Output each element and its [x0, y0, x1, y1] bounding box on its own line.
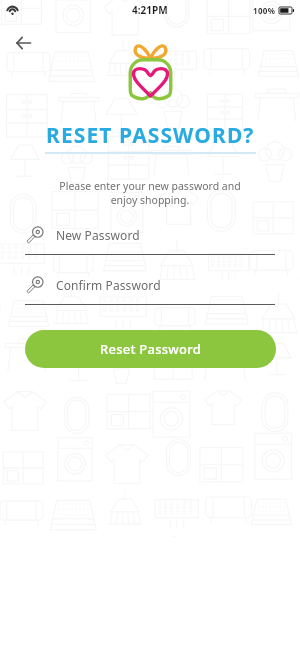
- button[interactable]: Confirm Password: [25, 276, 275, 305]
- staticText: Please enter your new password and enjoy…: [59, 179, 241, 207]
- staticText: Confirm Password: [56, 277, 161, 293]
- staticText: New Password: [56, 227, 140, 243]
- staticText: 4:21PM: [132, 3, 168, 17]
- button[interactable]: Reset Password: [25, 330, 276, 368]
- staticText: RESET PASSWORD?: [46, 121, 255, 150]
- staticText: 100%: [253, 5, 276, 16]
- staticText: Reset Password: [100, 340, 202, 358]
- button[interactable]: Back: [5, 25, 41, 61]
- button[interactable]: New Password: [25, 226, 275, 255]
